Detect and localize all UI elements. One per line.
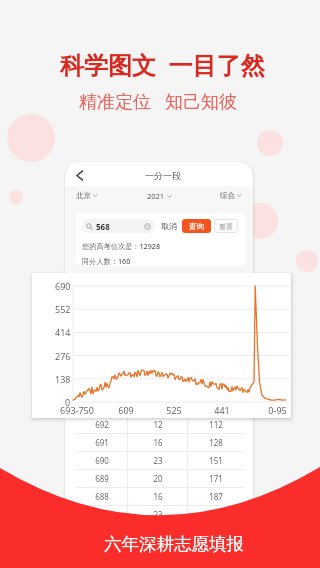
staticText: 414	[55, 326, 71, 338]
staticText: 112	[209, 419, 223, 430]
button[interactable]: 568	[82, 219, 155, 233]
button[interactable]: 2021	[147, 191, 172, 201]
staticText: 16	[153, 437, 163, 448]
staticText: 689	[95, 473, 109, 484]
staticText: 查询	[189, 222, 204, 231]
staticText: 276	[55, 350, 71, 362]
button[interactable]: 北京	[76, 191, 98, 200]
button[interactable]: Back	[73, 167, 88, 182]
staticText: 科学图文 一目了然	[60, 48, 265, 81]
staticText: 441	[214, 404, 230, 416]
staticText: 北京	[76, 191, 91, 200]
staticText: 一分一段	[145, 170, 181, 181]
staticText: 692	[95, 419, 109, 430]
staticText: 690	[95, 455, 109, 466]
staticText: 取消	[161, 221, 177, 231]
staticText: 12	[153, 419, 163, 430]
staticText: 171	[209, 473, 223, 484]
button[interactable]: 综合	[220, 191, 242, 200]
staticText: 609	[118, 404, 134, 416]
staticText: 23	[153, 455, 163, 466]
button[interactable]: 重置	[214, 219, 238, 233]
staticText: 138	[55, 373, 71, 385]
staticText: 568	[96, 221, 110, 232]
staticText: 0	[65, 396, 71, 408]
staticText: 16	[153, 491, 163, 502]
staticText: 综合	[220, 191, 235, 200]
staticText: 525	[166, 404, 182, 416]
staticText: 151	[209, 455, 223, 466]
staticText: 重置	[219, 222, 233, 231]
staticText: 691	[95, 437, 109, 448]
staticText: 20	[153, 473, 163, 484]
staticText: 0-95	[268, 404, 287, 416]
staticText: 六年深耕志愿填报	[104, 533, 244, 555]
staticText: 精准定位 知己知彼	[79, 89, 238, 114]
staticText: 187	[209, 491, 223, 502]
staticText: 690	[55, 280, 71, 292]
staticText: 2021	[147, 191, 165, 201]
staticText: 688	[95, 491, 109, 502]
staticText: 23	[153, 509, 163, 520]
staticText: 552	[55, 303, 71, 315]
button[interactable]: 查询	[182, 219, 211, 233]
staticText: 128	[209, 437, 223, 448]
staticText: 您的高考位次是：12928	[82, 241, 161, 251]
staticText: 同分人数：160	[82, 256, 131, 266]
button[interactable]: 取消	[161, 221, 177, 231]
staticText: 693-750	[60, 404, 94, 416]
